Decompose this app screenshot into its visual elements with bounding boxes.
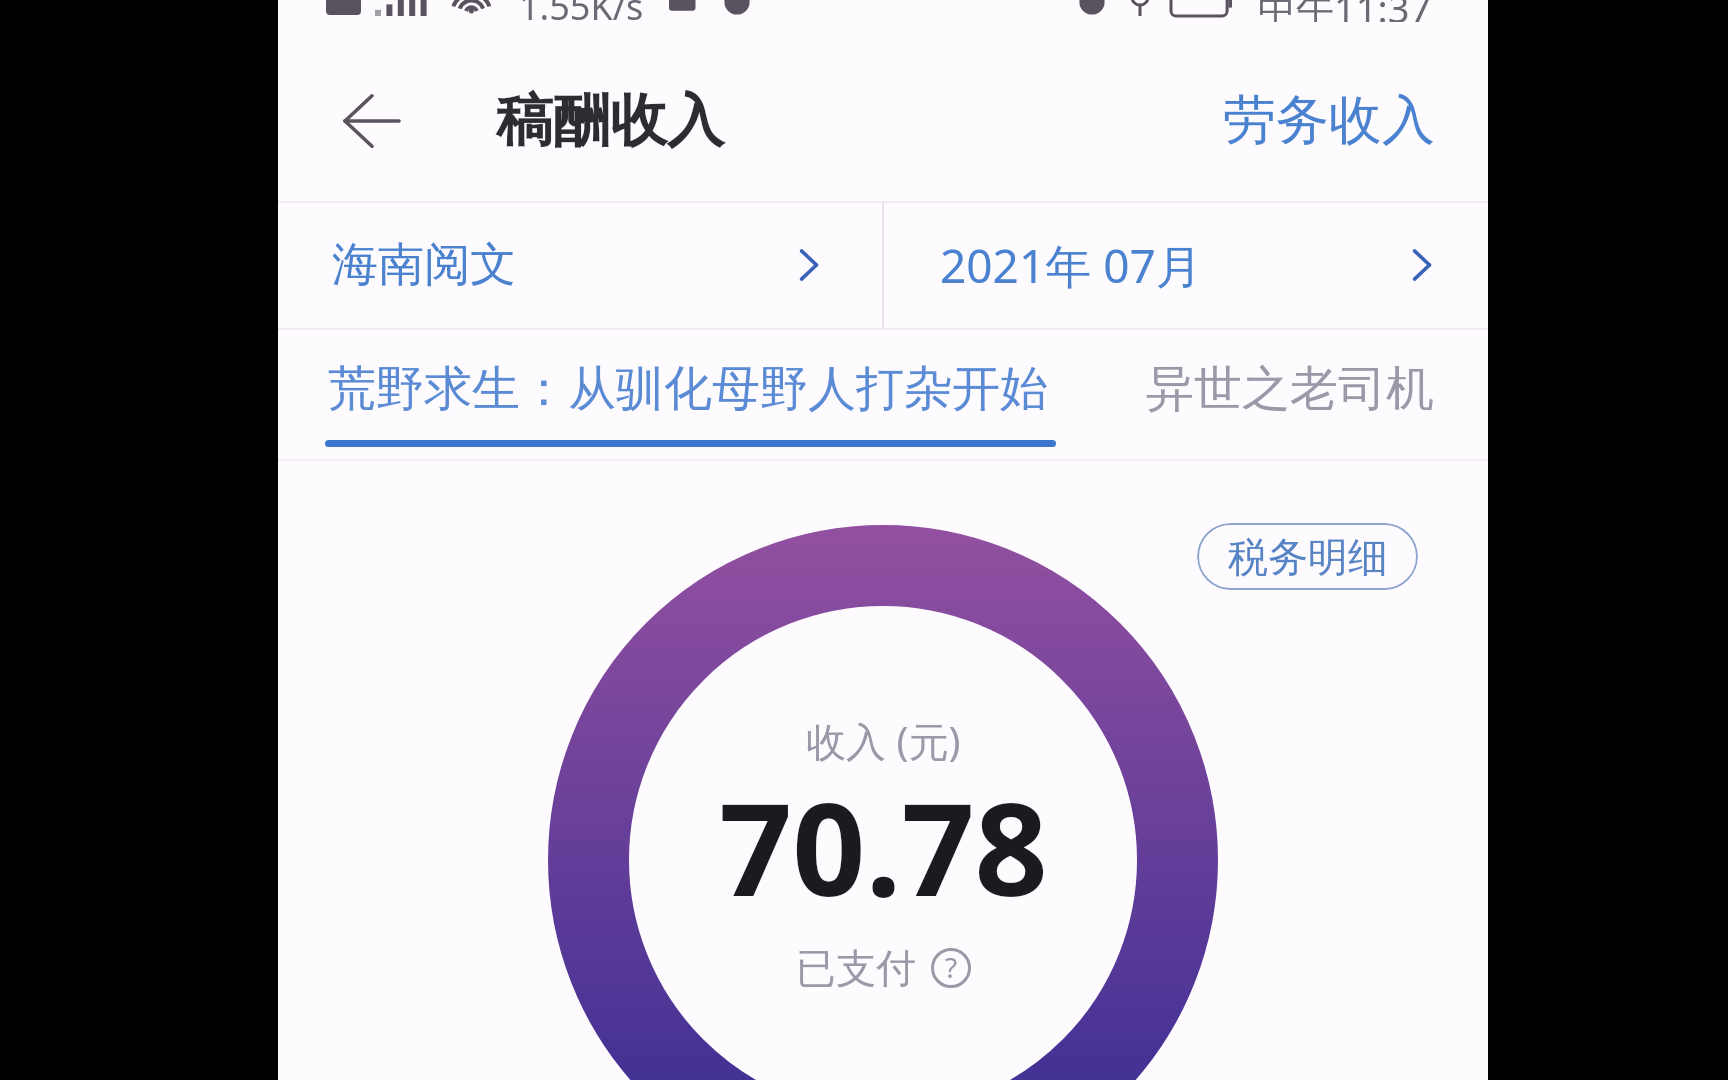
button[interactable]: Help (931, 948, 971, 988)
staticText: 1.55K/s (519, 0, 644, 22)
staticText: 收入 (元) (806, 713, 961, 768)
button[interactable]: Back (332, 81, 412, 161)
staticText: 已支付 (796, 943, 916, 993)
staticText: 税务明细 (1228, 532, 1388, 582)
staticText: 异世之老司机 (1146, 359, 1434, 419)
staticText: 中午11:37 (1258, 0, 1432, 22)
button[interactable]: 海南阅文 (278, 202, 882, 328)
button[interactable]: 税务明细 (1197, 523, 1418, 590)
staticText: 劳务收入 (1223, 87, 1435, 154)
staticText: 70.78 (719, 759, 1048, 933)
button[interactable]: 荒野求生：从驯化母野人打杂开始 (298, 329, 1113, 459)
button[interactable]: 劳务收入 (1195, 69, 1488, 172)
button[interactable]: 2021年 07月 (884, 202, 1488, 328)
staticText: 稿酬收入 (496, 85, 724, 157)
staticText: 海南阅文 (332, 236, 516, 294)
staticText: ? (945, 948, 958, 986)
staticText: 2021年 07月 (940, 234, 1202, 297)
staticText: 荒野求生：从驯化母野人打杂开始 (328, 359, 1048, 419)
button[interactable]: 异世之老司机 (1116, 329, 1468, 459)
